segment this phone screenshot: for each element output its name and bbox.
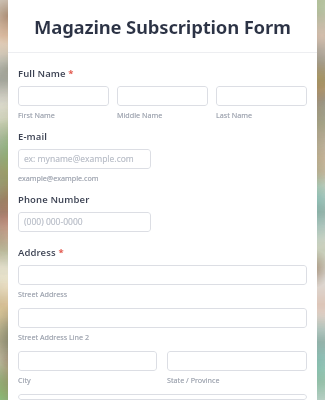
- staticText: example@example.com: [18, 173, 99, 183]
- staticText: (000) 000-0000: [24, 216, 83, 228]
- button[interactable]: [18, 86, 109, 106]
- staticText: Middle Name: [117, 110, 163, 120]
- button[interactable]: [18, 265, 307, 285]
- staticText: First Name: [18, 110, 55, 120]
- staticText: ex: myname@example.com: [24, 153, 134, 165]
- staticText: State / Province: [167, 375, 220, 385]
- staticText: City: [18, 375, 31, 385]
- button[interactable]: (000) 000-0000: [18, 212, 151, 232]
- button[interactable]: [18, 351, 157, 371]
- staticText: Street Address Line 2: [18, 332, 90, 342]
- staticText: Address *: [18, 246, 64, 259]
- button[interactable]: [167, 351, 307, 371]
- staticText: Last Name: [216, 110, 252, 120]
- staticText: Full Name *: [18, 67, 74, 80]
- button[interactable]: ex: myname@example.com: [18, 149, 151, 169]
- staticText: Magazine Subscription Form: [34, 14, 291, 39]
- button[interactable]: [18, 394, 307, 400]
- button[interactable]: [216, 86, 307, 106]
- staticText: E-mail: [18, 130, 47, 143]
- button[interactable]: [117, 86, 208, 106]
- staticText: Street Address: [18, 289, 68, 299]
- staticText: Phone Number: [18, 193, 90, 206]
- button[interactable]: [18, 308, 307, 328]
